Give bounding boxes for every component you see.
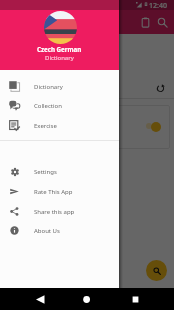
- button[interactable]: Refresh: [155, 83, 166, 94]
- staticText: Share this app: [34, 208, 75, 216]
- button[interactable]: Settings: [0, 162, 119, 181]
- staticText: Collection: [34, 102, 62, 110]
- staticText: Czech German: [37, 45, 82, 53]
- button[interactable]: Word list: [134, 11, 156, 33]
- staticText: Settings: [34, 168, 57, 176]
- button[interactable]: Dictionary: [0, 77, 119, 96]
- staticText: Exercise: [34, 122, 57, 130]
- button[interactable]: [4, 105, 170, 149]
- button[interactable]: Collection: [0, 96, 119, 115]
- button[interactable]: Search: [151, 11, 173, 33]
- button[interactable]: Share this app: [0, 202, 119, 221]
- staticText: Dictionary: [34, 83, 63, 91]
- button[interactable]: Exercise: [0, 116, 119, 135]
- staticText: Dictionary: [45, 54, 74, 62]
- button[interactable]: Rate This App: [0, 182, 119, 201]
- staticText: 12:40: [149, 1, 167, 11]
- button[interactable]: Search: [146, 260, 167, 281]
- staticText: Rate This App: [34, 188, 73, 196]
- staticText: About Us: [34, 227, 60, 235]
- button[interactable]: About Us: [0, 221, 119, 240]
